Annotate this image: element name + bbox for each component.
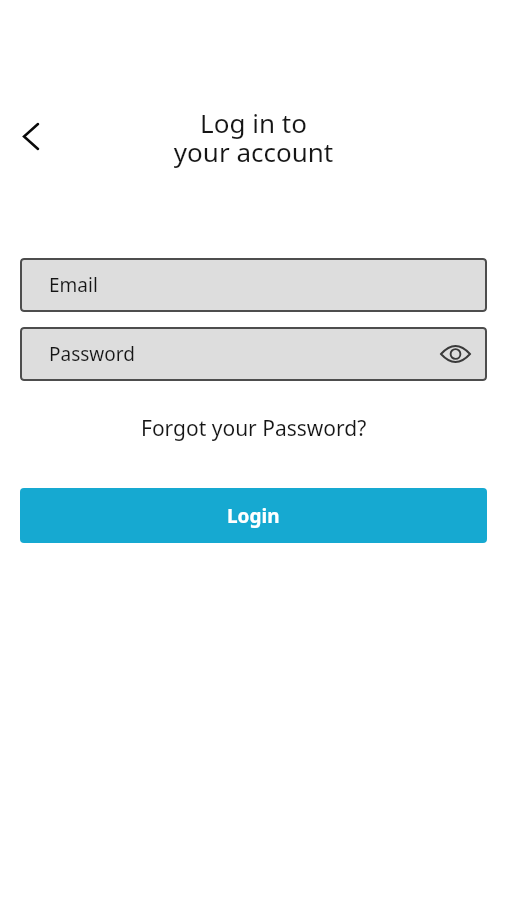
button[interactable]: Password (20, 327, 487, 381)
button[interactable] (440, 339, 470, 369)
button[interactable]: Email (20, 258, 487, 312)
button[interactable] (7, 112, 55, 160)
staticText: Login (227, 503, 280, 529)
staticText: Log in to your account (0, 105, 507, 169)
button[interactable]: Login (20, 488, 487, 543)
staticText: Password (49, 341, 135, 367)
button[interactable]: Forgot your Password? (141, 414, 367, 443)
staticText: Email (49, 272, 98, 298)
